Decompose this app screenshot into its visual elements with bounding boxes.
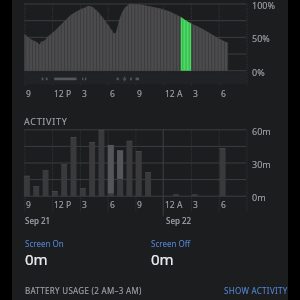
staticText: Screen Off: [151, 238, 191, 249]
staticText: 3: [82, 88, 87, 100]
staticText: Sep 21: [25, 215, 51, 226]
staticText: 9: [26, 88, 31, 100]
staticText: 9: [26, 199, 31, 211]
staticText: SHOW ACTIVITY: [224, 285, 288, 296]
staticText: 6: [221, 88, 226, 100]
staticText: ACTIVITY: [24, 115, 68, 127]
button[interactable]: Screen On: [25, 238, 64, 269]
staticText: 9: [137, 88, 142, 100]
staticText: 3: [193, 88, 198, 100]
button[interactable]: SHOW ACTIVITY: [224, 285, 288, 296]
staticText: 12 A: [165, 199, 183, 211]
staticText: 12 P: [54, 88, 72, 100]
staticText: Screen On: [25, 238, 64, 249]
button[interactable]: Screen Off: [151, 238, 191, 269]
staticText: 6: [110, 199, 115, 211]
staticText: BATTERY USAGE (2 AM–3 AM): [25, 285, 142, 296]
staticText: 3: [82, 199, 87, 211]
staticText: 50%: [252, 32, 270, 44]
staticText: 12 P: [54, 199, 72, 211]
staticText: 9: [137, 199, 142, 211]
staticText: 0%: [252, 66, 265, 78]
staticText: 0m: [252, 191, 266, 203]
staticText: 60m: [252, 125, 271, 137]
staticText: 100%: [252, 0, 275, 11]
staticText: 6: [221, 199, 226, 211]
staticText: 6: [110, 88, 115, 100]
staticText: 0m: [151, 249, 174, 269]
staticText: 3: [193, 199, 198, 211]
staticText: Sep 22: [166, 215, 192, 226]
staticText: 30m: [252, 158, 271, 170]
staticText: 12 A: [165, 88, 183, 100]
staticText: 0m: [25, 249, 48, 269]
